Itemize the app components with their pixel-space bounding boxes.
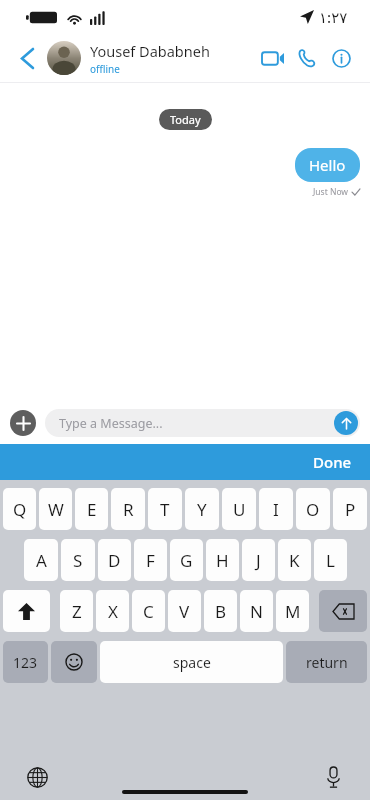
staticText: Z [72,600,82,623]
staticText: A [36,549,47,572]
staticText: O [306,498,320,521]
button[interactable]: 123 [3,641,48,683]
staticText: V [179,600,190,623]
staticText: return [306,653,348,672]
staticText: J [256,549,261,572]
staticText: Y [197,498,207,521]
button[interactable]: F [134,539,167,581]
staticText: B [215,600,227,623]
button[interactable]: P [333,488,367,530]
button[interactable]: Z [60,590,93,632]
button[interactable]: Back [12,43,42,73]
button[interactable]: Change keyboard [22,762,52,792]
staticText: Q [13,498,27,521]
staticText: ١:٢٧ [319,7,348,27]
staticText: W [48,498,64,521]
button[interactable]: C [132,590,165,632]
button[interactable]: R [111,488,145,530]
button[interactable]: Q [3,488,36,530]
button[interactable]: N [240,590,273,632]
button[interactable]: Info [324,41,358,75]
button[interactable]: D [98,539,131,581]
staticText: offline [90,62,120,76]
staticText: U [233,498,246,521]
staticText: E [87,498,97,521]
button[interactable]: Emoji [51,641,97,683]
button[interactable]: return [286,641,367,683]
button[interactable]: B [204,590,237,632]
button[interactable]: L [314,539,347,581]
button[interactable]: K [278,539,311,581]
staticText: Done [313,452,352,472]
staticText: 123 [13,653,38,672]
button[interactable]: Hello [295,148,360,182]
staticText: R [123,498,134,521]
button[interactable]: S [61,539,95,581]
staticText: G [180,549,193,572]
staticText: K [289,549,300,572]
staticText: Hello [309,155,346,175]
staticText: F [146,549,155,572]
button[interactable]: E [75,488,108,530]
button[interactable]: T [148,488,182,530]
staticText: T [160,498,170,521]
button[interactable]: O [296,488,330,530]
staticText: D [108,549,121,572]
button[interactable]: Type a Message... [45,409,360,437]
staticText: space [173,653,211,672]
button[interactable]: M [276,590,309,632]
button[interactable]: Dictation [318,762,348,792]
button[interactable]: Yousef Dababneh [90,41,256,76]
button[interactable]: Backspace [319,590,367,632]
staticText: C [143,600,154,623]
staticText: S [73,549,83,572]
button[interactable]: V [168,590,201,632]
button[interactable]: I [259,488,293,530]
button[interactable]: G [170,539,203,581]
button[interactable]: W [39,488,72,530]
button[interactable]: U [222,488,256,530]
staticText: X [108,600,118,623]
button[interactable]: A [24,539,58,581]
staticText: Just Now [313,186,349,198]
staticText: H [216,549,229,572]
button[interactable]: Profile photo [47,41,81,75]
button[interactable]: Send [334,411,358,435]
button[interactable]: Voice call [290,41,324,75]
button[interactable]: J [242,539,275,581]
staticText: P [345,498,356,521]
staticText: I [273,498,279,521]
button[interactable]: Video call [256,41,290,75]
staticText: M [285,600,301,623]
button[interactable]: space [100,641,283,683]
staticText: Today [170,112,201,127]
staticText: L [326,549,335,572]
button[interactable]: Shift [3,590,50,632]
staticText: N [250,600,263,623]
button[interactable]: X [96,590,129,632]
button[interactable]: Add attachment [10,410,36,436]
staticText: Yousef Dababneh [90,41,210,61]
button[interactable]: Done [295,446,370,478]
button[interactable]: Y [185,488,219,530]
staticText: Type a Message... [59,415,163,432]
button[interactable]: H [206,539,239,581]
